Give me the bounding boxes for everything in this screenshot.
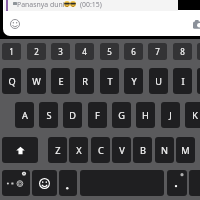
- staticText: J: [169, 109, 172, 122]
- button[interactable]: T: [100, 68, 119, 94]
- button[interactable]: 1: [2, 43, 21, 60]
- staticText: 8: [180, 46, 185, 57]
- staticText: 6: [131, 46, 136, 57]
- staticText: Y: [131, 75, 137, 88]
- button[interactable]: 4: [75, 43, 94, 60]
- button[interactable]: M: [176, 137, 195, 163]
- button[interactable]: Shift: [2, 137, 38, 163]
- staticText: Panasnya dunia: [17, 0, 69, 9]
- staticText: F: [95, 109, 100, 122]
- button[interactable]: G: [112, 102, 131, 128]
- button[interactable]: X: [69, 137, 88, 163]
- staticText: T: [107, 75, 113, 88]
- staticText: C: [98, 144, 104, 157]
- staticText: 5: [107, 46, 112, 57]
- staticText: K: [192, 109, 198, 122]
- staticText: 1: [9, 46, 14, 57]
- button[interactable]: B: [133, 137, 152, 163]
- button[interactable]: D: [63, 102, 82, 128]
- staticText: G: [118, 109, 125, 122]
- staticText: I: [181, 75, 185, 88]
- staticText: D: [69, 109, 76, 122]
- button[interactable]: A: [15, 102, 34, 128]
- button[interactable]: 5: [100, 43, 119, 60]
- staticText: 7: [155, 46, 160, 57]
- button[interactable]: F: [88, 102, 107, 128]
- button[interactable]: 6: [124, 43, 143, 60]
- button[interactable]: V: [112, 137, 131, 163]
- button[interactable]: 8: [173, 43, 192, 60]
- button[interactable]: Comma: [59, 170, 77, 196]
- button[interactable]: E: [51, 68, 70, 94]
- staticText: 3: [58, 46, 63, 57]
- staticText: Z: [55, 144, 61, 157]
- staticText: R: [82, 75, 88, 88]
- button[interactable]: Q: [2, 68, 21, 94]
- staticText: H: [142, 109, 149, 122]
- staticText: S: [46, 109, 52, 122]
- button[interactable]: C: [91, 137, 110, 163]
- staticText: X: [76, 144, 82, 157]
- staticText: M: [181, 144, 190, 157]
- button[interactable]: I: [173, 68, 192, 94]
- button[interactable]: 9: [197, 43, 200, 60]
- staticText: A: [22, 109, 28, 122]
- button[interactable]: 3: [51, 43, 70, 60]
- staticText: 2: [34, 46, 39, 57]
- staticText: V: [119, 144, 125, 157]
- button[interactable]: 2: [27, 43, 46, 60]
- button[interactable]: K: [185, 102, 200, 128]
- staticText: W: [32, 75, 41, 88]
- button[interactable]: Symbols and settings: [2, 170, 30, 196]
- button[interactable]: H: [136, 102, 155, 128]
- button[interactable]: U: [149, 68, 168, 94]
- button[interactable]: Z: [48, 137, 67, 163]
- staticText: (00:15): [80, 0, 102, 9]
- button[interactable]: S: [39, 102, 58, 128]
- button[interactable]: Camera: [193, 20, 200, 29]
- button[interactable]: Enter: [189, 170, 200, 196]
- button[interactable]: 7: [148, 43, 167, 60]
- button[interactable]: R: [75, 68, 94, 94]
- button[interactable]: Y: [124, 68, 143, 94]
- staticText: B: [140, 144, 146, 157]
- button[interactable]: O: [197, 68, 200, 94]
- button[interactable]: N: [155, 137, 174, 163]
- button[interactable]: W: [27, 68, 46, 94]
- staticText: N: [161, 144, 168, 157]
- staticText: Q: [8, 75, 16, 88]
- button[interactable]: Emoji: [10, 19, 20, 29]
- staticText: E: [58, 75, 64, 88]
- button[interactable]: Emoji keyboard: [32, 170, 57, 196]
- staticText: U: [155, 75, 162, 88]
- button[interactable]: Period: [167, 170, 187, 196]
- staticText: 4: [82, 46, 87, 57]
- button[interactable]: J: [161, 102, 180, 128]
